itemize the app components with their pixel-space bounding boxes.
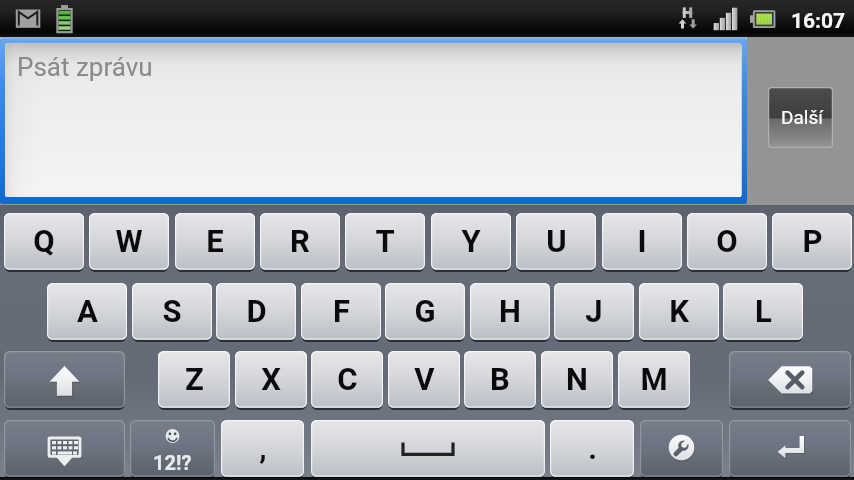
staticText: Další [781,106,823,128]
button[interactable]: M [618,351,690,411]
button[interactable]: E [175,213,255,273]
staticText: Z [185,361,204,397]
staticText: Q [33,223,55,259]
staticText: J [585,293,603,329]
button[interactable]: R [260,213,340,273]
staticText: B [490,361,510,397]
button[interactable]: Další [768,87,833,148]
staticText: Y [461,223,481,259]
button[interactable]: C [311,351,383,411]
button[interactable]: Z [158,351,230,411]
button[interactable]: T [345,213,425,273]
button[interactable]: Y [431,213,511,273]
staticText: 12!? [153,451,192,474]
staticText: , [259,431,267,466]
button[interactable]: O [687,213,767,273]
button[interactable]: Psát zprávu [0,37,747,204]
button[interactable]: W [89,213,169,273]
button[interactable]: . [550,420,634,480]
button[interactable]: A [47,283,127,343]
staticText: N [566,361,588,397]
button[interactable]: Hide keyboard [4,420,125,480]
staticText: D [246,293,267,329]
staticText: A [77,293,98,329]
staticText: V [414,361,435,397]
staticText: X [261,361,281,397]
button[interactable]: P [772,213,852,273]
button[interactable]: Symbols [130,420,215,480]
button[interactable]: J [554,283,634,343]
button[interactable]: B [464,351,536,411]
button[interactable]: Enter [729,420,851,480]
button[interactable]: U [516,213,596,273]
button[interactable]: V [388,351,460,411]
button[interactable]: Space [311,420,545,480]
button[interactable]: D [216,283,296,343]
button[interactable]: , [221,420,304,480]
staticText: H [499,293,521,329]
button[interactable]: K [639,283,719,343]
button[interactable]: H [470,283,550,343]
staticText: T [375,223,395,259]
button[interactable]: L [723,283,803,343]
staticText: . [588,431,597,466]
staticText: R [290,223,310,259]
button[interactable]: Settings [640,420,723,480]
staticText: S [162,293,182,329]
staticText: L [755,293,772,329]
button[interactable]: X [235,351,307,411]
staticText: E [206,223,224,259]
staticText: M [640,361,668,397]
staticText: W [115,223,143,259]
staticText: I [637,223,647,259]
button[interactable]: F [301,283,381,343]
staticText: U [546,223,567,259]
staticText: Psát zprávu [17,52,153,82]
button[interactable]: Shift [4,351,125,411]
button[interactable]: S [132,283,212,343]
button[interactable]: N [541,351,613,411]
button[interactable]: G [385,283,465,343]
staticText: 16:07 [791,9,846,34]
button[interactable]: Delete [729,351,851,411]
staticText: P [802,223,823,259]
button[interactable]: I [602,213,682,273]
staticText: K [669,293,689,329]
staticText: G [414,293,436,329]
staticText: O [716,223,738,259]
staticText: C [337,361,358,397]
staticText: F [333,293,350,329]
button[interactable]: Q [4,213,84,273]
